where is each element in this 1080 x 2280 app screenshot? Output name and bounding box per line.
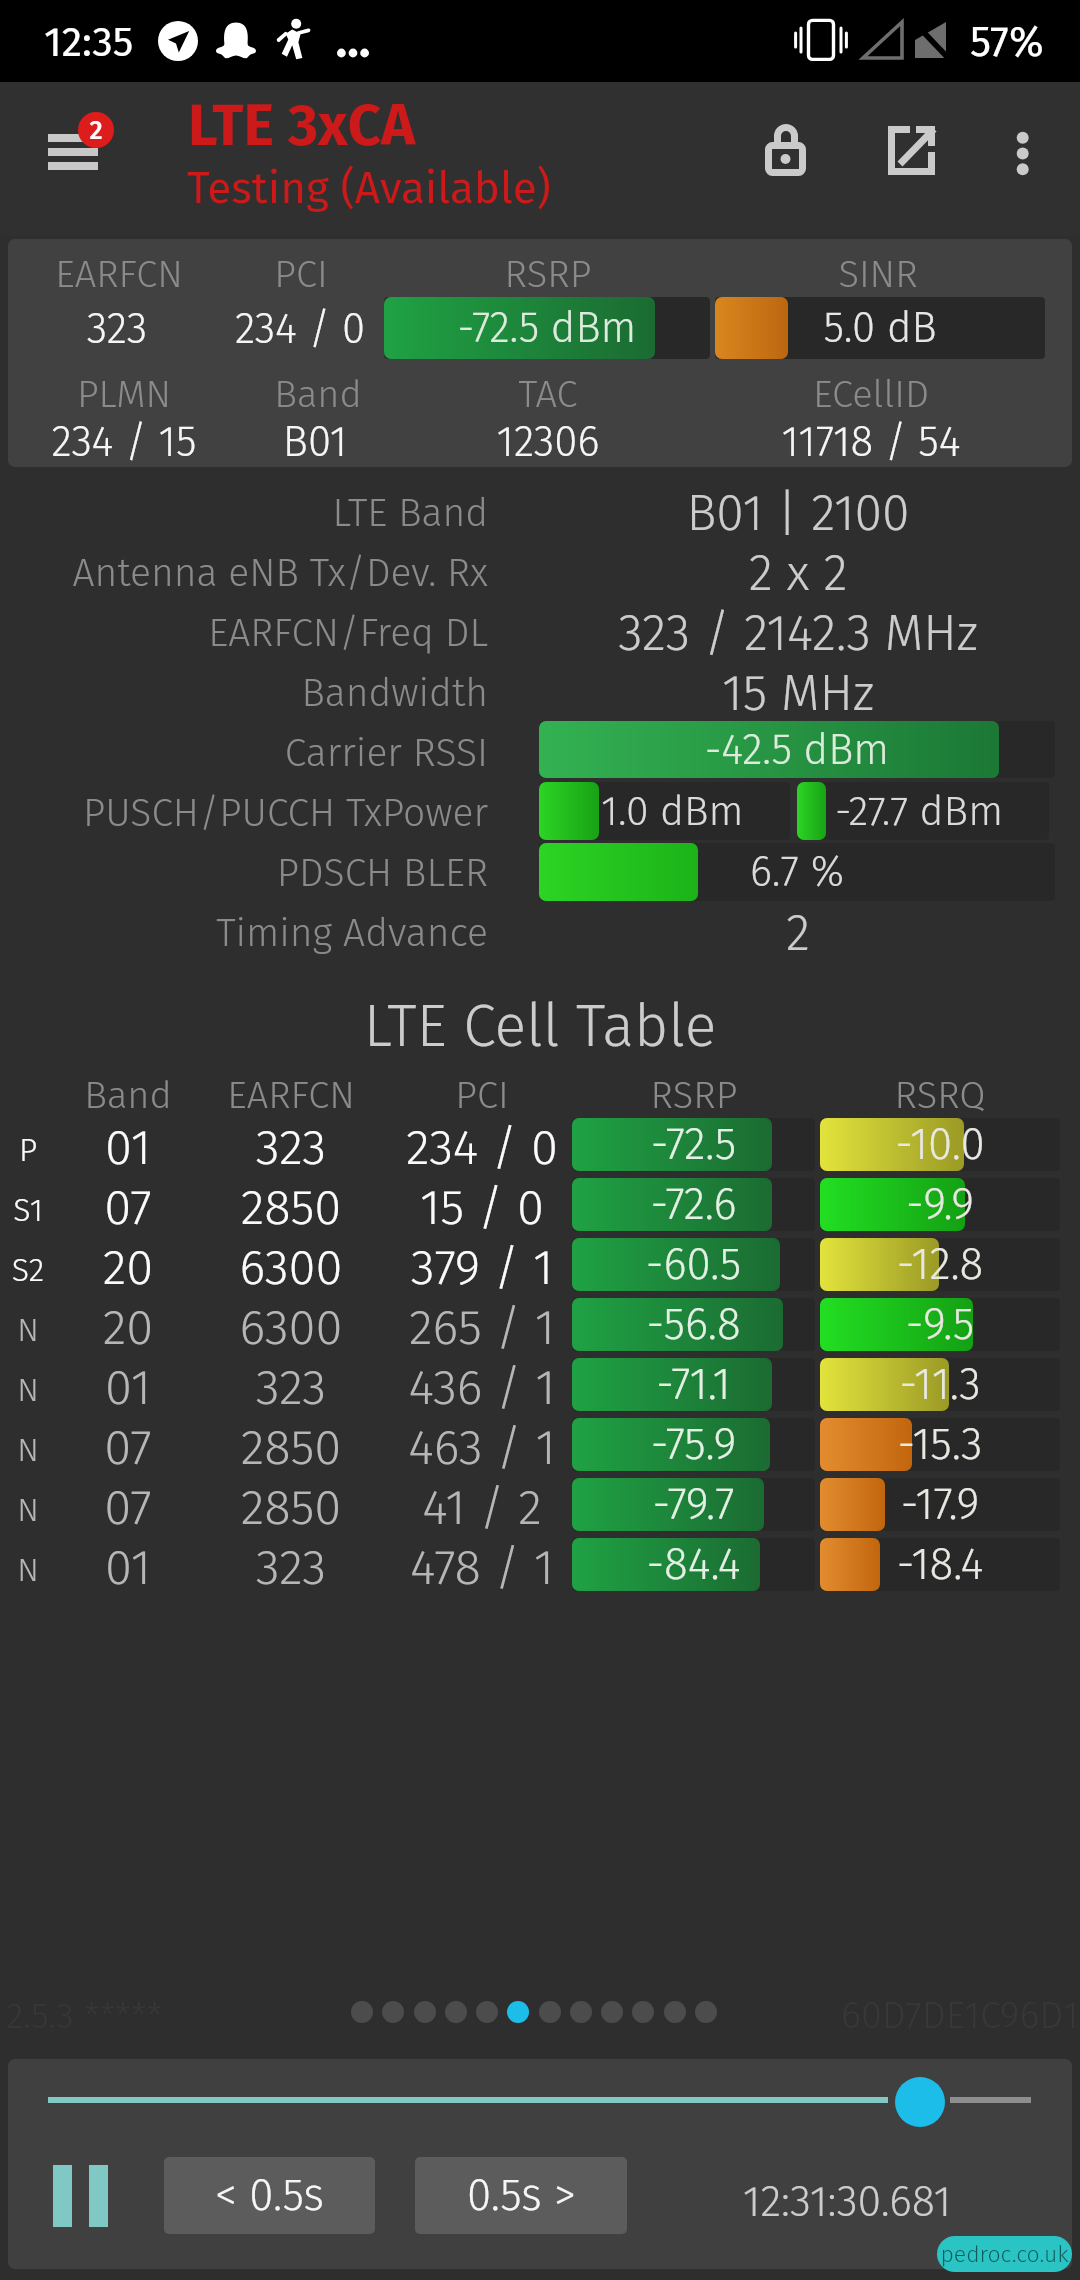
staticText: RSRP [574, 1072, 814, 1118]
staticText: Testing (Available) [187, 162, 551, 215]
staticText: -9.9 [820, 1178, 1060, 1231]
staticText: 12:35 [44, 18, 134, 67]
button[interactable]: Page 4 [445, 2001, 467, 2023]
button[interactable]: Page 12 [695, 2001, 717, 2023]
button[interactable]: Page 11 [664, 2001, 686, 2023]
staticText: 15 / 0 [382, 1178, 582, 1237]
staticText: 379 / 1 [382, 1238, 582, 1297]
staticText: 6300 [191, 1238, 391, 1297]
staticText: Band [218, 371, 418, 417]
staticText: -84.4 [572, 1538, 815, 1591]
staticText: S2 [0, 1251, 56, 1289]
staticText: Timing Advance [0, 910, 488, 957]
button[interactable]: Seek position [895, 2077, 945, 2127]
staticText: RSRQ [820, 1072, 1060, 1118]
staticText: -72.5 dBm [384, 303, 710, 353]
staticText: TAC [383, 371, 713, 417]
staticText: -72.5 [572, 1118, 815, 1171]
button[interactable]: Lock [741, 96, 831, 186]
button[interactable]: Page 2 [382, 2001, 404, 2023]
button[interactable]: Menu [30, 94, 120, 184]
staticText: 01 [28, 1118, 228, 1177]
staticText: -72.6 [572, 1178, 815, 1231]
button[interactable]: 0.5s > [415, 2157, 627, 2234]
staticText: -17.9 [820, 1478, 1060, 1531]
button[interactable]: N [0, 1475, 1080, 1535]
staticText: Band [28, 1072, 228, 1118]
button[interactable]: N [0, 1295, 1080, 1355]
staticText: 6.7 % [539, 847, 1055, 897]
staticText: 2850 [191, 1478, 391, 1537]
staticText: 234 / 0 [200, 304, 400, 354]
button[interactable]: N [0, 1355, 1080, 1415]
staticText: 07 [28, 1478, 228, 1537]
staticText: -56.8 [572, 1298, 815, 1351]
staticText: 234 / 0 [382, 1118, 582, 1177]
button[interactable]: Page 1 [351, 2001, 373, 2023]
staticText: -60.5 [572, 1238, 815, 1291]
staticText: EARFCN [19, 251, 219, 297]
button[interactable]: N [0, 1535, 1080, 1595]
staticText: 01 [28, 1358, 228, 1417]
staticText: EARFCN [191, 1072, 391, 1118]
staticText: -11.3 [820, 1358, 1060, 1411]
button[interactable]: Page 7 [539, 2001, 561, 2023]
staticText: -18.4 [820, 1538, 1060, 1591]
staticText: P [0, 1131, 56, 1169]
staticText: EARFCN/Freq DL [0, 610, 488, 657]
staticText: 323 [191, 1358, 391, 1417]
staticText: PDSCH BLER [0, 850, 488, 897]
button[interactable]: S1 [0, 1175, 1080, 1235]
staticText: 07 [28, 1178, 228, 1237]
button[interactable]: More options [978, 96, 1068, 186]
staticText: S1 [0, 1191, 56, 1229]
staticText: 265 / 1 [382, 1298, 582, 1357]
button[interactable]: P [0, 1115, 1080, 1175]
button[interactable]: Page 6 [507, 2001, 529, 2023]
staticText: 41 / 2 [382, 1478, 582, 1537]
staticText: 15 MHz [540, 663, 1056, 723]
staticText: -75.9 [572, 1418, 815, 1471]
staticText: 57% [970, 17, 1044, 67]
staticText: 2850 [191, 1178, 391, 1237]
button[interactable]: Page 5 [476, 2001, 498, 2023]
staticText: 2 x 2 [540, 543, 1056, 603]
staticText: 1.0 dBm [601, 787, 744, 836]
button[interactable]: N [0, 1415, 1080, 1475]
staticText: B01 | 2100 [540, 483, 1056, 543]
button[interactable]: < 0.5s [164, 2157, 375, 2234]
staticText: 436 / 1 [382, 1358, 582, 1417]
staticText: 6300 [191, 1298, 391, 1357]
staticText: 323 / 2142.3 MHz [540, 603, 1056, 663]
staticText: -15.3 [820, 1418, 1060, 1471]
staticText: 323 [191, 1538, 391, 1597]
staticText: 234 / 15 [24, 417, 224, 467]
staticText: 2850 [191, 1418, 391, 1477]
button[interactable]: Pause [48, 2157, 124, 2235]
staticText: 11718 / 54 [706, 417, 1036, 467]
staticText: 12:31:30.681 [647, 2176, 1047, 2228]
button[interactable]: Open externally [866, 96, 956, 186]
staticText: SINR [713, 251, 1043, 297]
staticText: 20 [28, 1298, 228, 1357]
staticText: -12.8 [820, 1238, 1060, 1291]
staticText: PUSCH/PUCCH TxPower [0, 790, 488, 837]
staticText: Bandwidth [0, 670, 488, 717]
button[interactable]: Page 10 [632, 2001, 654, 2023]
button[interactable]: Page 9 [601, 2001, 623, 2023]
staticText: Carrier RSSI [0, 730, 488, 777]
staticText: 323 [17, 304, 217, 354]
button[interactable]: EARFCN [8, 239, 1072, 467]
button[interactable]: Page 3 [414, 2001, 436, 2023]
staticText: Antenna eNB Tx/Dev. Rx [0, 550, 488, 597]
staticText: 01 [28, 1538, 228, 1597]
staticText: B01 [215, 417, 415, 467]
button[interactable]: S2 [0, 1235, 1080, 1295]
staticText: < 0.5s [215, 2169, 324, 2222]
staticText: -79.7 [572, 1478, 815, 1531]
button[interactable]: Page 8 [570, 2001, 592, 2023]
staticText: N [0, 1311, 56, 1349]
staticText: -71.1 [572, 1358, 815, 1411]
